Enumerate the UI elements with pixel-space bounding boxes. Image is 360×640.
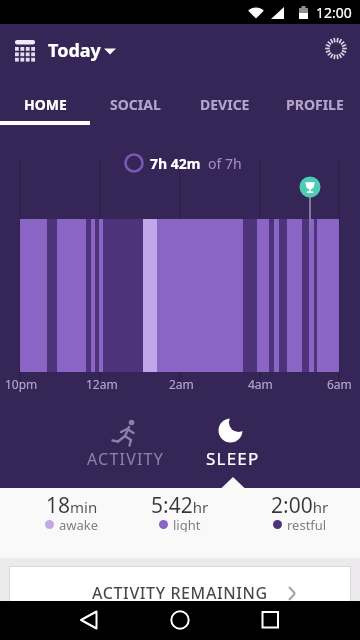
button[interactable]: DEVICE	[180, 84, 270, 125]
staticText: 12am	[86, 376, 118, 392]
staticText: ACTIVITY	[87, 448, 164, 470]
staticText: of 7h	[208, 154, 242, 173]
button[interactable]: PROFILE	[270, 84, 360, 125]
staticText: 7h 42m	[150, 154, 201, 173]
staticText: PROFILE	[286, 95, 344, 114]
button[interactable]: SOCIAL	[90, 84, 180, 125]
staticText: 2am	[169, 376, 194, 392]
staticText: 5:42hr	[151, 491, 209, 517]
button[interactable]	[148, 601, 212, 640]
staticText: restful	[287, 516, 327, 532]
staticText: ACTIVITY REMAINING	[92, 582, 268, 604]
button[interactable]: ACTIVITY	[75, 406, 175, 470]
staticText: HOME	[24, 95, 67, 114]
button[interactable]	[58, 601, 122, 640]
staticText: 12:00	[316, 3, 352, 22]
button[interactable]	[318, 30, 354, 66]
button[interactable]: SLEEP	[183, 406, 283, 470]
staticText: 2:00hr	[271, 491, 329, 517]
button[interactable]	[238, 601, 302, 640]
staticText: 10pm	[5, 376, 38, 392]
staticText: 18min	[46, 491, 98, 517]
staticText: SLEEP	[206, 447, 260, 470]
staticText: DEVICE	[200, 95, 250, 114]
button[interactable]	[8, 28, 126, 68]
button[interactable]: ACTIVITY REMAINING	[9, 566, 351, 606]
button[interactable]: HOME	[0, 84, 90, 125]
staticText: 4am	[248, 376, 273, 392]
staticText: Today	[48, 38, 101, 63]
staticText: light	[173, 516, 201, 532]
staticText: 6am	[327, 376, 352, 392]
staticText: awake	[59, 516, 99, 532]
staticText: SOCIAL	[110, 95, 161, 114]
